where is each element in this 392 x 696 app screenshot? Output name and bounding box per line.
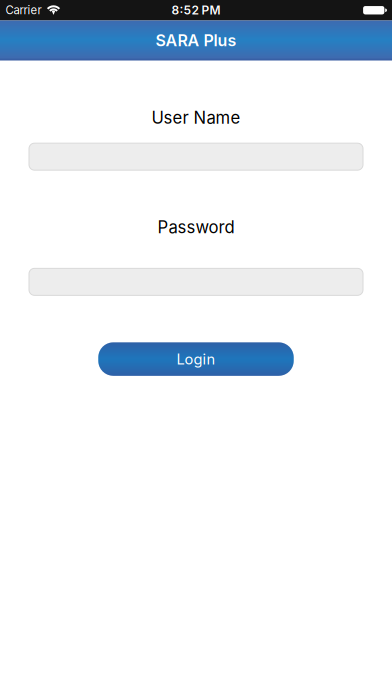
staticText: Carrier [5, 3, 41, 17]
staticText: Login [176, 350, 215, 368]
button[interactable]: Login [98, 342, 294, 376]
staticText: 8:52 PM [171, 3, 220, 17]
staticText: User Name [151, 107, 240, 128]
staticText: Password [157, 217, 234, 237]
staticText: SARA Plus [155, 31, 236, 50]
